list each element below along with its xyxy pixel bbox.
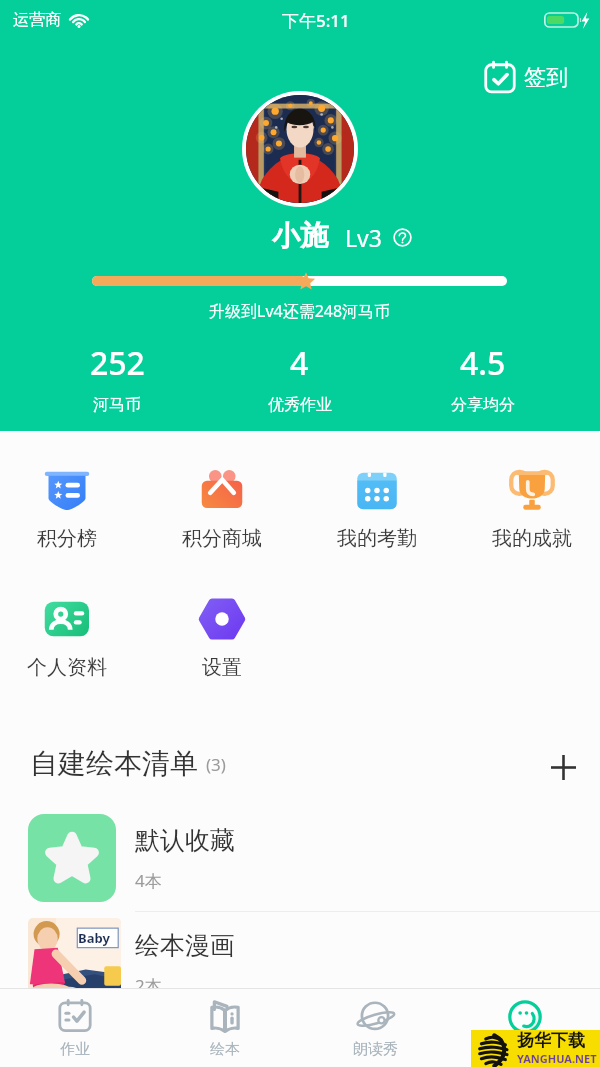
staticText: 设置 (202, 655, 242, 680)
button[interactable]: 我的 (450, 989, 600, 1067)
button[interactable]: 作业 (0, 989, 150, 1067)
staticText: 运营商 (13, 10, 61, 30)
staticText: 作业 (60, 1040, 90, 1059)
staticText: 优秀作业 (268, 395, 332, 415)
staticText: 我的成就 (492, 526, 572, 551)
staticText: 河马币 (93, 395, 141, 415)
staticText: 2本 (135, 974, 162, 997)
staticText: 积分商城 (182, 526, 262, 551)
staticText: 我的考勤 (337, 526, 417, 551)
button[interactable]: Baby (0, 912, 600, 1018)
staticText: 252 (90, 341, 145, 385)
staticText: 下午5:11 (282, 9, 350, 32)
button[interactable]: 我的成就 (480, 460, 584, 556)
button[interactable]: 签到 (479, 57, 572, 99)
button[interactable]: 积分商城 (170, 460, 274, 556)
staticText: 4本 (135, 869, 162, 892)
staticText: 4 (290, 341, 309, 385)
staticText: 朗读秀 (353, 1040, 398, 1059)
button[interactable]: 绘本 (150, 989, 300, 1067)
staticText: 自建绘本清单 (30, 746, 198, 781)
button[interactable]: 我的考勤 (325, 460, 429, 556)
staticText: YANGHUA.NET (517, 1051, 597, 1066)
staticText: 个人资料 (27, 655, 107, 680)
staticText: 小施 (272, 218, 328, 253)
staticText: 默认收藏 (135, 825, 235, 856)
staticText: 积分榜 (37, 526, 97, 551)
staticText: 绘本漫画 (135, 930, 235, 961)
button[interactable]: 个人资料 (15, 590, 119, 685)
staticText: 扬华下载 (517, 1030, 585, 1051)
staticText: 分享均分 (451, 395, 515, 415)
staticText: Baby (78, 929, 110, 947)
staticText: 升级到Lv4还需248河马币 (209, 300, 391, 322)
staticText: 我的 (510, 1040, 540, 1059)
staticText: 绘本 (210, 1040, 240, 1059)
button[interactable]: 设置 (170, 590, 274, 685)
staticText: 签到 (524, 64, 568, 92)
button[interactable]: 默认收藏 (0, 805, 600, 911)
staticText: 4.5 (460, 341, 506, 385)
button[interactable]: 朗读秀 (300, 989, 450, 1067)
button[interactable]: 积分榜 (15, 460, 119, 556)
button[interactable]: 添加 (545, 749, 581, 785)
staticText: Lv3 (345, 222, 382, 253)
staticText: (3) (206, 753, 226, 776)
